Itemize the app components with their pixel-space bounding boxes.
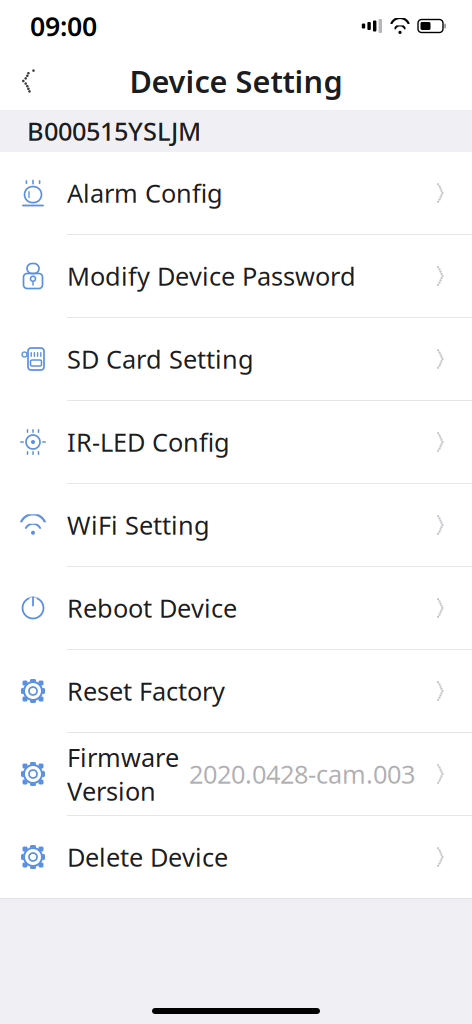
button[interactable]: Alarm Config — [0, 152, 472, 234]
button[interactable]: Reset Factory — [0, 650, 472, 732]
staticText: IR-LED Config — [67, 425, 230, 459]
staticText: Reset Factory — [67, 674, 225, 708]
staticText: Reboot Device — [67, 591, 237, 625]
button[interactable]: Reboot Device — [0, 567, 472, 649]
staticText: B000515YSLJM — [27, 114, 201, 148]
button[interactable]: Modify Device Password — [0, 235, 472, 317]
staticText: Modify Device Password — [67, 259, 356, 293]
staticText: SD Card Setting — [67, 342, 254, 376]
staticText: Device Setting — [129, 61, 342, 101]
button[interactable]: Delete Device — [0, 816, 472, 898]
staticText: WiFi Setting — [67, 508, 210, 542]
button[interactable]: WiFi Setting — [0, 484, 472, 566]
button[interactable]: IR-LED Config — [0, 401, 472, 483]
staticText: 09:00 — [30, 8, 97, 44]
staticText: Alarm Config — [67, 176, 223, 210]
button[interactable]: Back — [6, 58, 52, 104]
staticText: Firmware Version — [67, 740, 179, 808]
button[interactable]: SD Card Setting — [0, 318, 472, 400]
button[interactable]: Firmware Version — [0, 733, 472, 815]
staticText: Delete Device — [67, 840, 228, 874]
staticText: 2020.0428-cam.003 — [189, 757, 415, 791]
